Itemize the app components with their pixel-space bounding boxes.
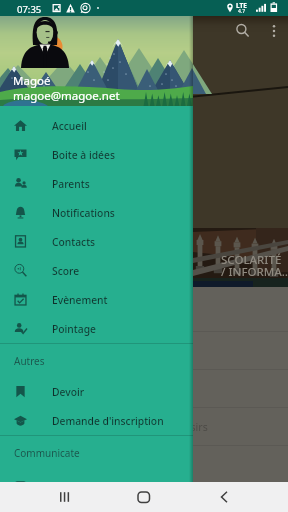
staticText: Contacts xyxy=(52,235,96,249)
staticText: 4.7 xyxy=(238,8,246,15)
staticText: Magoé xyxy=(13,73,51,89)
button[interactable]: Evènement xyxy=(0,285,193,314)
staticText: Notifications xyxy=(52,206,115,220)
staticText: LTE xyxy=(236,1,247,10)
button[interactable]: Score xyxy=(0,256,193,285)
button[interactable]: Notifications xyxy=(0,198,193,227)
staticText: Pointage xyxy=(52,322,96,336)
staticText: Boite à idées xyxy=(52,148,115,162)
button[interactable]: Message xyxy=(0,472,193,501)
button[interactable]: Parents xyxy=(0,169,193,198)
staticText: Loisirs xyxy=(176,420,208,434)
staticText: Parents xyxy=(52,177,90,191)
button[interactable]: Demande d'inscription xyxy=(0,406,193,435)
staticText: SCOLARITÉ / INFORMA… xyxy=(221,252,288,280)
staticText: Score xyxy=(52,264,80,278)
button[interactable]: Devoir xyxy=(0,377,193,406)
staticText: 07:35 xyxy=(17,3,42,16)
button[interactable]: Accueil xyxy=(0,111,193,140)
staticText: Evènement xyxy=(52,293,108,307)
staticText: Devoir xyxy=(52,385,85,399)
staticText: magoe@magoe.net xyxy=(13,88,120,104)
staticText: Accueil xyxy=(52,119,87,133)
button[interactable]: Search xyxy=(233,21,253,41)
staticText: Communicate xyxy=(14,446,80,460)
button[interactable]: Pointage xyxy=(0,314,193,343)
button[interactable]: Boite à idées xyxy=(0,140,193,169)
staticText: Message xyxy=(52,480,96,494)
staticText: Demande d'inscription xyxy=(52,414,164,428)
button[interactable]: More options xyxy=(264,21,284,41)
button[interactable]: Contacts xyxy=(0,227,193,256)
staticText: Autres xyxy=(14,354,45,368)
